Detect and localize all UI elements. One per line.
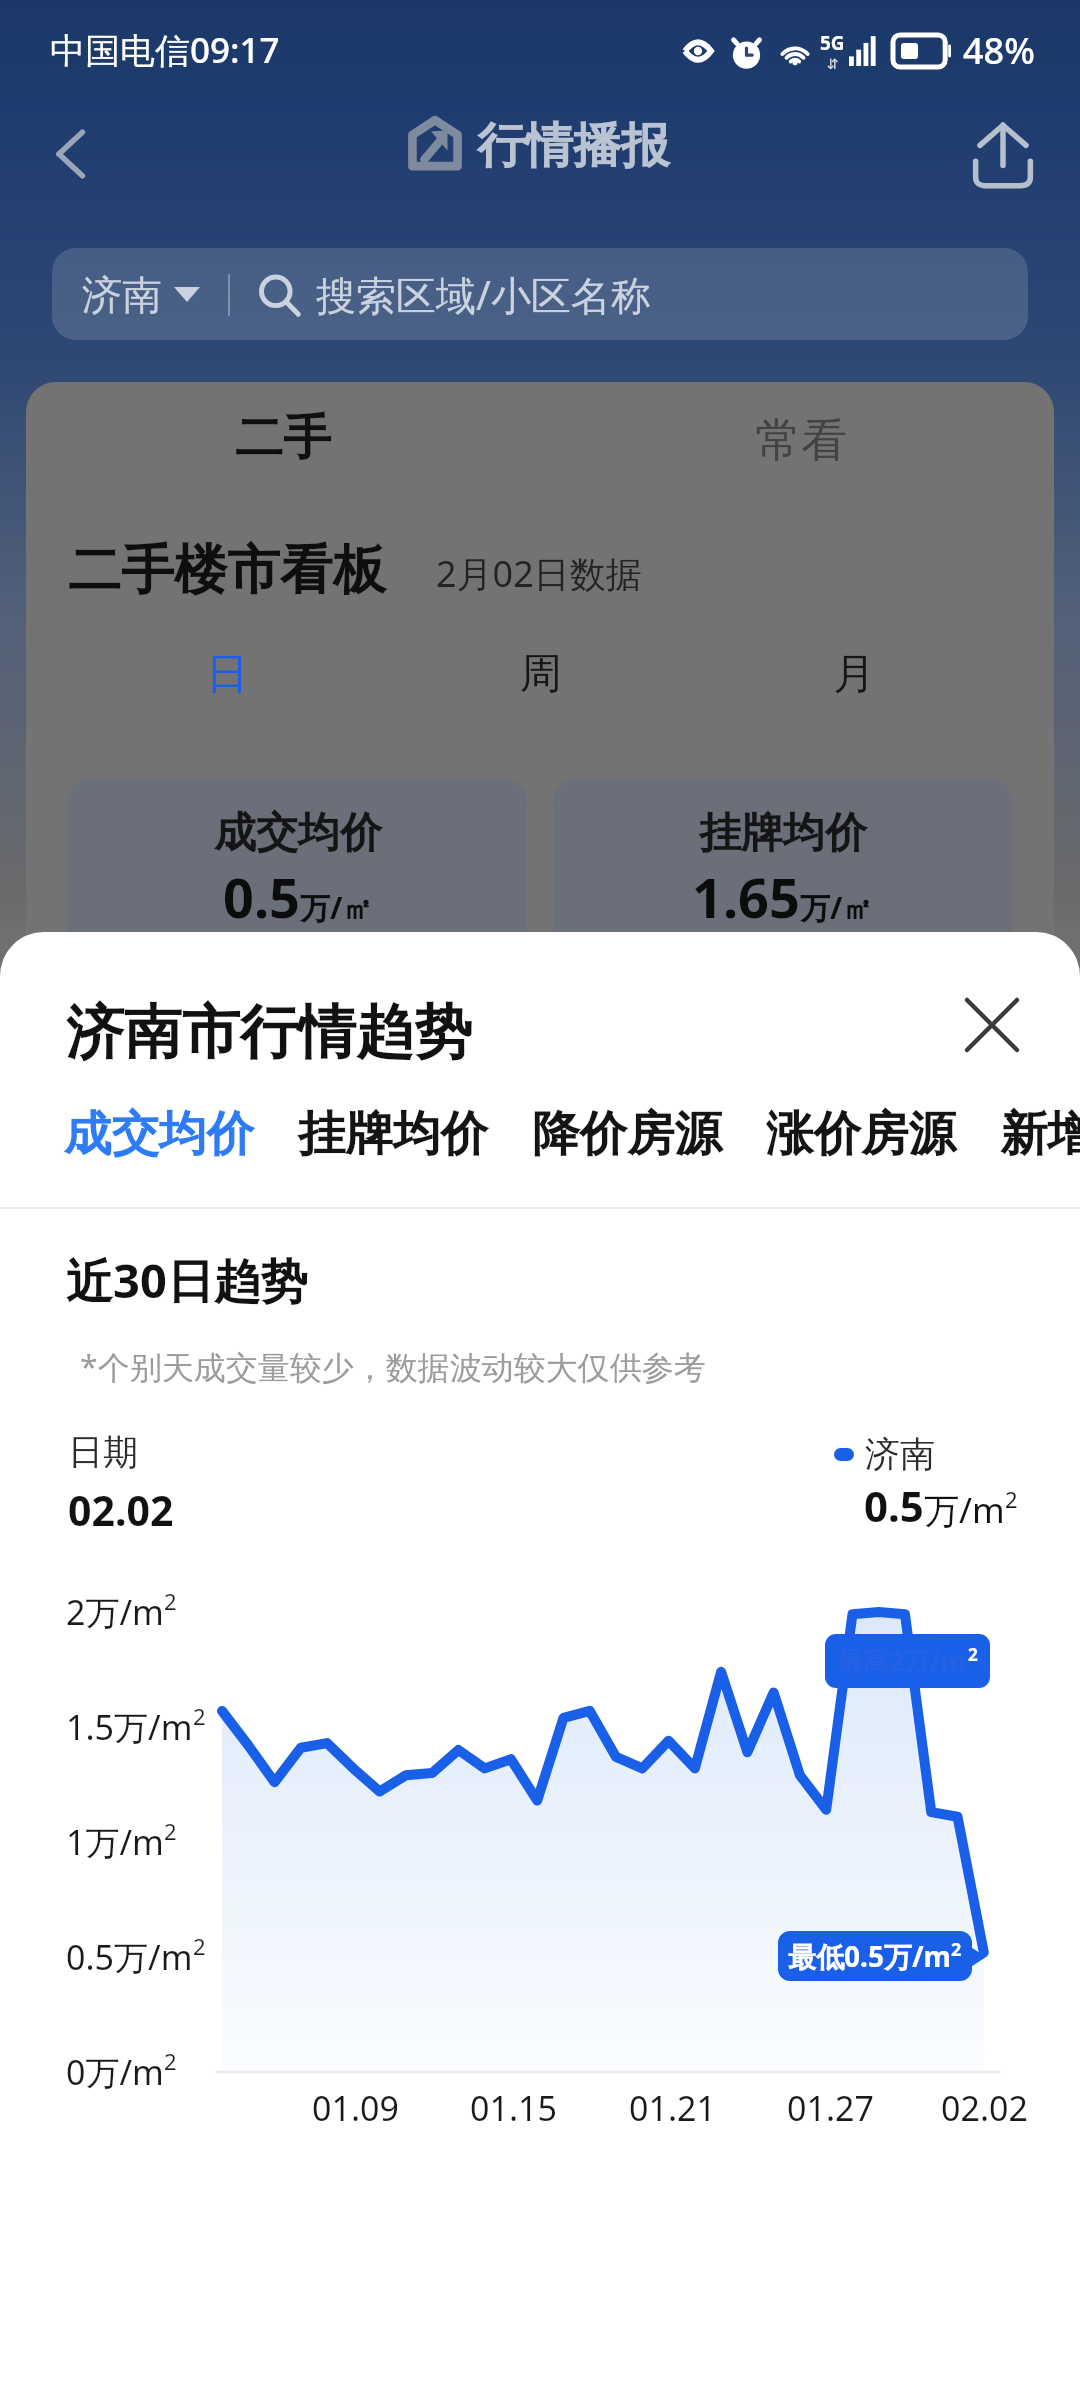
staticText: 5G (820, 30, 845, 56)
staticText: 万/㎡ (800, 887, 873, 928)
staticText: 01.15 (470, 2085, 557, 2131)
staticText: 01.09 (312, 2085, 399, 2131)
staticText: 二手 (235, 408, 331, 468)
button[interactable]: 新增 (1000, 1104, 1080, 1164)
staticText: 2 (1005, 1484, 1018, 1514)
staticText: 0.5万/m (66, 1934, 193, 1980)
button[interactable]: Share (967, 118, 1039, 190)
staticText: 最低0.5万/m (788, 1937, 951, 1975)
staticText: 0.5 (864, 1477, 924, 1534)
staticText: 二手楼市看板 (68, 537, 386, 604)
staticText: 行情播报 (477, 116, 669, 176)
staticText: 01.21 (629, 2085, 716, 2131)
staticText: *个别天成交量较少，数据波动较大仅供参考 (80, 1345, 706, 1389)
staticText: 02.02 (941, 2085, 1028, 2131)
staticText: 2 (164, 1816, 177, 1846)
staticText: 新增 (1000, 1104, 1080, 1164)
staticText: 2 (193, 1931, 206, 1961)
staticText: 近30日趋势 (66, 1248, 308, 1312)
staticText: 01.27 (787, 2085, 874, 2131)
button[interactable]: 常看 (755, 412, 847, 470)
button[interactable]: 日 (70, 648, 384, 701)
staticText: 2 (951, 1937, 962, 1962)
staticText: 2 (968, 1643, 978, 1666)
staticText: 日 (206, 648, 248, 701)
button[interactable]: 降价房源 (532, 1104, 722, 1164)
staticText: 中国电信09:17 (50, 26, 280, 74)
staticText: 2 (164, 2046, 177, 2076)
staticText: 挂牌均价 (298, 1104, 488, 1164)
button[interactable]: Close (952, 985, 1032, 1065)
staticText: 48% (963, 26, 1035, 75)
staticText: 1万/m (66, 1819, 164, 1865)
staticText: 2 (164, 1586, 177, 1616)
staticText: 1.5万/m (66, 1704, 193, 1750)
button[interactable]: 二手 (235, 408, 331, 468)
staticText: 济南 (865, 1432, 935, 1476)
staticText: 2月02日数据 (436, 549, 642, 598)
staticText: 2万/m (66, 1589, 164, 1635)
staticText: 济南 (82, 270, 162, 320)
staticText: 搜索区域/小区名称 (316, 267, 651, 322)
button[interactable]: 挂牌均价 (298, 1104, 488, 1164)
staticText: 02.02 (68, 1482, 174, 1538)
button[interactable]: 成交均价 (64, 1104, 254, 1164)
staticText: 最高2万/m (837, 1643, 967, 1679)
staticText: 2 (193, 1701, 206, 1731)
button[interactable]: 周 (384, 648, 697, 701)
button[interactable]: 成交均价 (68, 779, 527, 1019)
staticText: 涨价房源 (766, 1104, 956, 1164)
button[interactable]: 济南 (52, 248, 1028, 340)
staticText: 周 (520, 648, 562, 701)
staticText: 万/㎡ (300, 887, 373, 928)
staticText: 0.5 (223, 860, 300, 934)
staticText: ⇵ (827, 56, 839, 72)
staticText: 1.65 (692, 860, 800, 934)
staticText: 济南市行情趋势 (66, 996, 472, 1069)
button[interactable]: Back (34, 115, 112, 193)
staticText: 成交均价 (64, 1104, 254, 1164)
staticText: 常看 (755, 412, 847, 470)
staticText: 万/m (924, 1486, 1005, 1534)
staticText: 降价房源 (532, 1104, 722, 1164)
button[interactable]: 挂牌均价 (553, 779, 1012, 1019)
staticText: 0万/m (66, 2049, 164, 2095)
staticText: 月 (833, 648, 875, 701)
staticText: 挂牌均价 (699, 807, 867, 860)
staticText: 成交均价 (214, 807, 382, 860)
button[interactable]: 涨价房源 (766, 1104, 956, 1164)
button[interactable]: 月 (697, 648, 1010, 701)
staticText: 日期 (68, 1430, 138, 1474)
